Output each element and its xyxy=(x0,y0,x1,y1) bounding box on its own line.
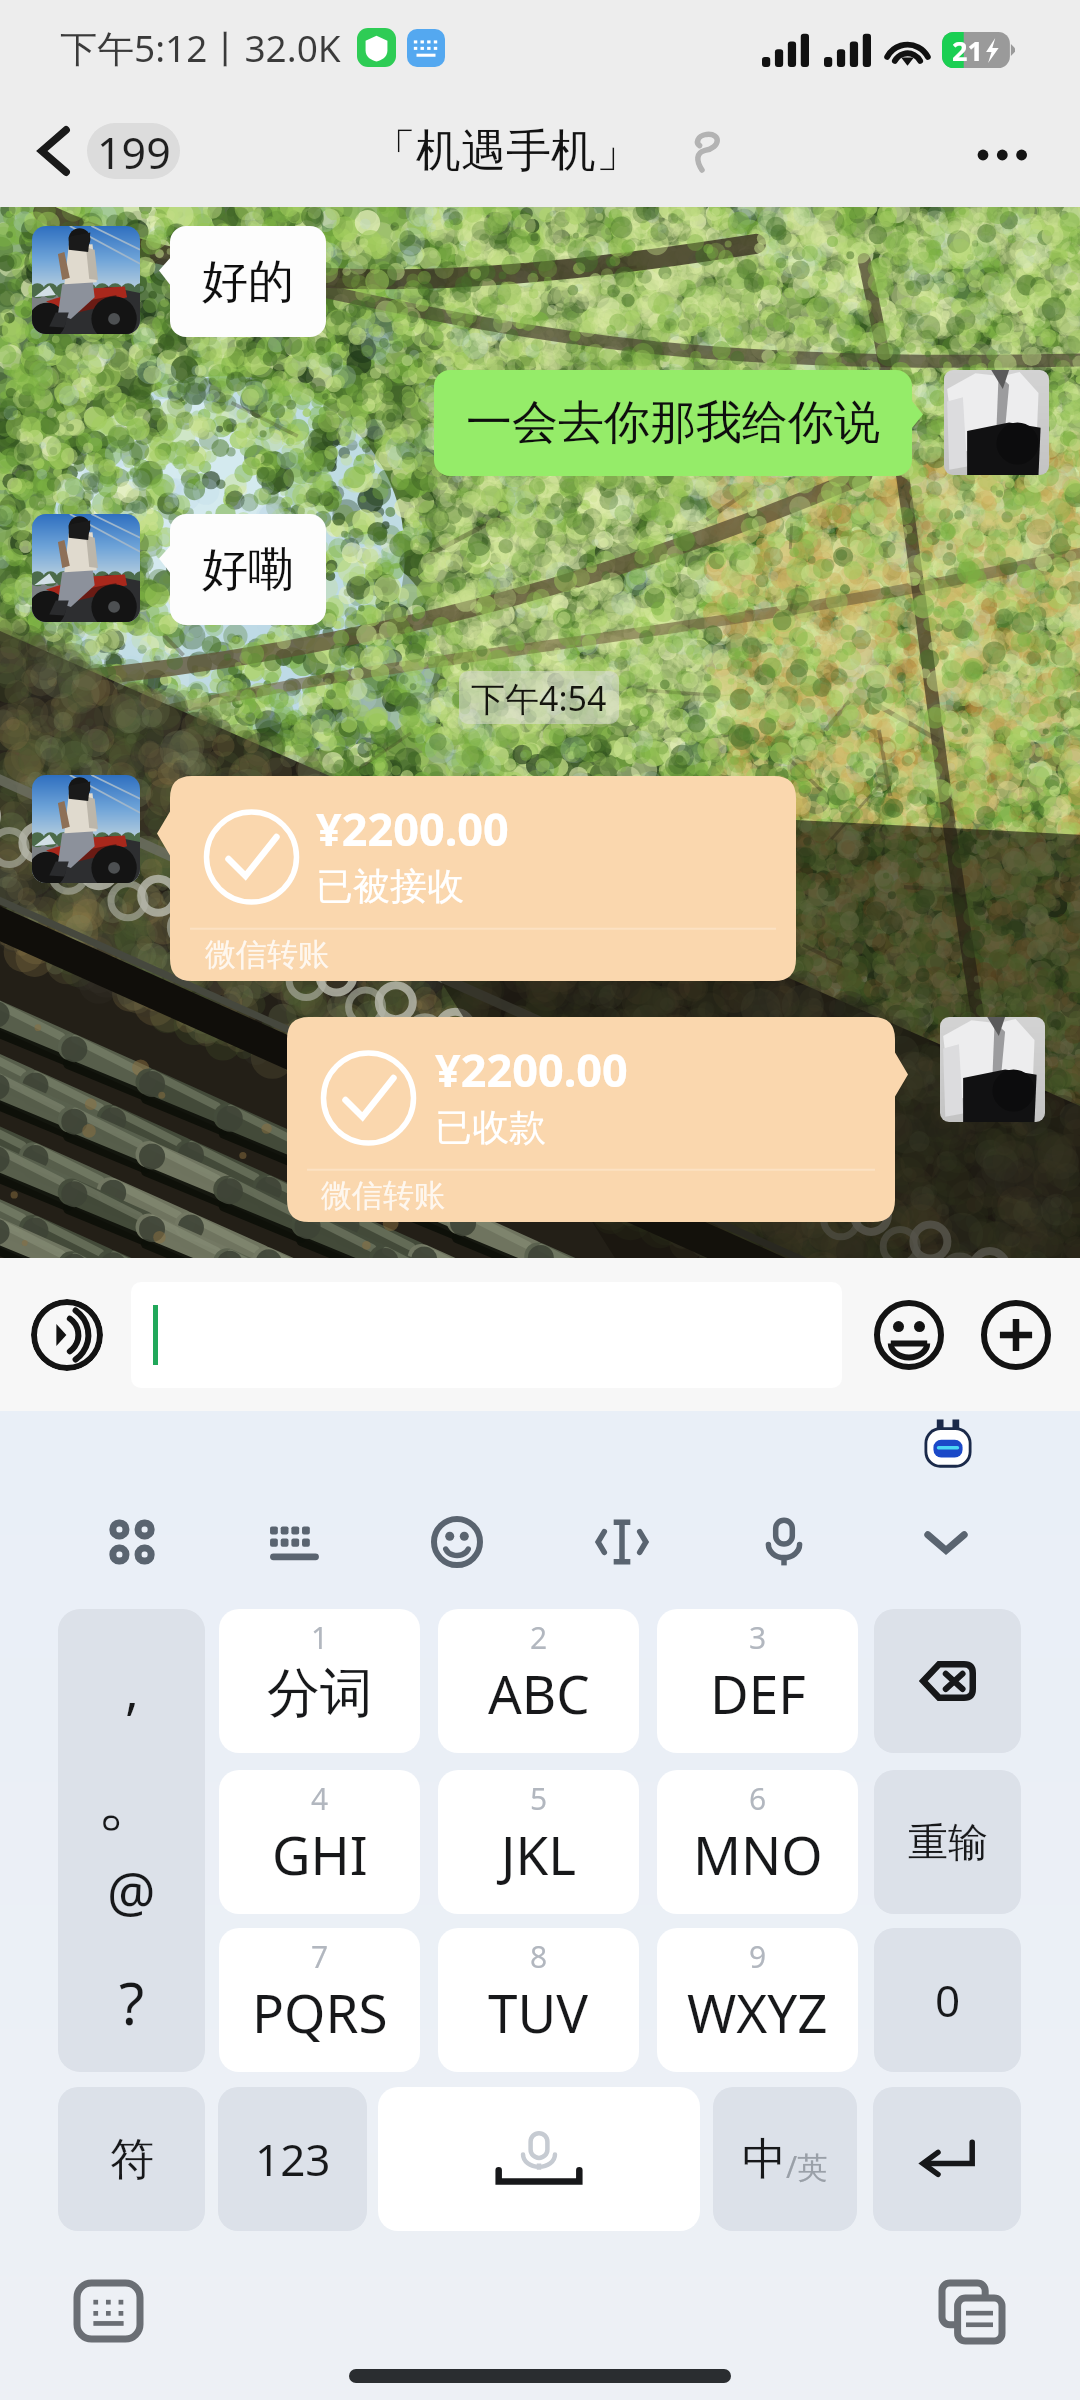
button[interactable]: Emoji xyxy=(419,1504,495,1580)
staticText: 好的 xyxy=(202,253,294,311)
staticText: , xyxy=(125,1653,139,1724)
staticText: DEF xyxy=(710,1657,806,1729)
staticText: GHI xyxy=(272,1818,368,1890)
button[interactable]: Space xyxy=(378,2087,700,2231)
staticText: 4 xyxy=(311,1778,329,1819)
staticText: 微信转账 xyxy=(205,935,329,974)
staticText: 21 xyxy=(952,32,983,68)
staticText: 2 xyxy=(530,1617,548,1658)
staticText: 199 xyxy=(97,123,171,179)
button[interactable]: Enter xyxy=(873,2087,1021,2231)
button[interactable]: Back xyxy=(38,123,180,179)
staticText: 好嘞 xyxy=(202,541,294,599)
staticText: 1 xyxy=(311,1617,329,1658)
staticText: 微信转账 xyxy=(321,1176,445,1215)
staticText: ¥2200.00 xyxy=(316,798,509,859)
button[interactable]: , xyxy=(58,1609,205,2072)
staticText: 6 xyxy=(749,1778,767,1819)
staticText: ? xyxy=(119,1963,145,2042)
button[interactable]: 1 xyxy=(219,1609,420,1753)
button[interactable]: Panels xyxy=(94,1504,170,1580)
staticText: 一会去你那我给你说 xyxy=(466,394,880,452)
button[interactable]: Avatar xyxy=(32,775,140,883)
staticText: TUV xyxy=(488,1976,589,2048)
button[interactable]: 9 xyxy=(657,1928,858,2072)
staticText: ¥2200.00 xyxy=(435,1039,628,1100)
button[interactable]: 5 xyxy=(438,1770,639,1914)
staticText: 7 xyxy=(311,1936,329,1977)
staticText: 已被接收 xyxy=(316,863,464,910)
button[interactable]: Avatar xyxy=(940,1017,1045,1122)
staticText: 3 xyxy=(749,1617,767,1658)
button[interactable]: 3 xyxy=(657,1609,858,1753)
staticText: /英 xyxy=(786,2146,828,2187)
button[interactable]: 好嘞 xyxy=(170,514,326,625)
button[interactable]: Avatar xyxy=(944,370,1049,475)
button[interactable]: Keyboard layout xyxy=(257,1504,333,1580)
button[interactable]: 好的 xyxy=(170,226,326,337)
button[interactable]: Avatar xyxy=(32,226,140,334)
button[interactable]: Cursor xyxy=(584,1504,660,1580)
other: Back xyxy=(38,128,70,174)
staticText: 下午5:12丨32.0K xyxy=(60,22,341,73)
staticText: 分词 xyxy=(267,1660,373,1727)
button[interactable]: 123 xyxy=(218,2087,367,2231)
button[interactable]: 中 xyxy=(713,2087,857,2231)
staticText: 123 xyxy=(255,2129,331,2189)
staticText: 中 xyxy=(742,2132,786,2187)
staticText: 9 xyxy=(749,1936,767,1977)
staticText: 。 xyxy=(96,1754,168,1834)
button[interactable] xyxy=(131,1282,842,1388)
button[interactable]: Clipboard xyxy=(942,2283,1002,2341)
button[interactable]: 一会去你那我给你说 xyxy=(434,370,912,476)
staticText: PQRS xyxy=(252,1976,388,2048)
button[interactable]: 6 xyxy=(657,1770,858,1914)
staticText: 0 xyxy=(935,1970,961,2030)
staticText: WXYZ xyxy=(687,1976,828,2048)
button[interactable]: Emoji xyxy=(873,1299,945,1371)
button[interactable]: ¥2200.00 xyxy=(287,1017,908,1222)
button[interactable]: Voice message xyxy=(31,1299,103,1371)
staticText: 「机遇手机」 xyxy=(371,123,641,180)
staticText: @ xyxy=(107,1854,156,1928)
button[interactable]: More options xyxy=(968,120,1038,190)
button[interactable]: More xyxy=(980,1299,1052,1371)
button[interactable]: 符 xyxy=(58,2087,205,2231)
staticText: 符 xyxy=(110,2132,154,2187)
button[interactable]: 4 xyxy=(219,1770,420,1914)
button[interactable]: Voice input xyxy=(746,1504,822,1580)
button[interactable]: Avatar xyxy=(32,514,140,622)
button[interactable]: Backspace xyxy=(874,1609,1021,1753)
staticText: 重输 xyxy=(908,1817,988,1867)
button[interactable]: ¥2200.00 xyxy=(157,776,796,981)
button[interactable]: Hide keyboard xyxy=(908,1504,984,1580)
staticText: 下午4:54 xyxy=(471,675,607,721)
staticText: MNO xyxy=(693,1818,823,1890)
button[interactable]: 重输 xyxy=(874,1770,1021,1914)
button[interactable]: 8 xyxy=(438,1928,639,2072)
staticText: JKL xyxy=(501,1818,577,1890)
staticText: 5 xyxy=(530,1778,548,1819)
button[interactable]: Switch keyboard xyxy=(77,2283,140,2339)
button[interactable]: 7 xyxy=(219,1928,420,2072)
staticText: 已收款 xyxy=(435,1104,546,1151)
button[interactable]: 2 xyxy=(438,1609,639,1753)
staticText: ABC xyxy=(488,1657,590,1729)
button[interactable]: 0 xyxy=(874,1928,1021,2072)
staticText: 8 xyxy=(530,1936,548,1977)
